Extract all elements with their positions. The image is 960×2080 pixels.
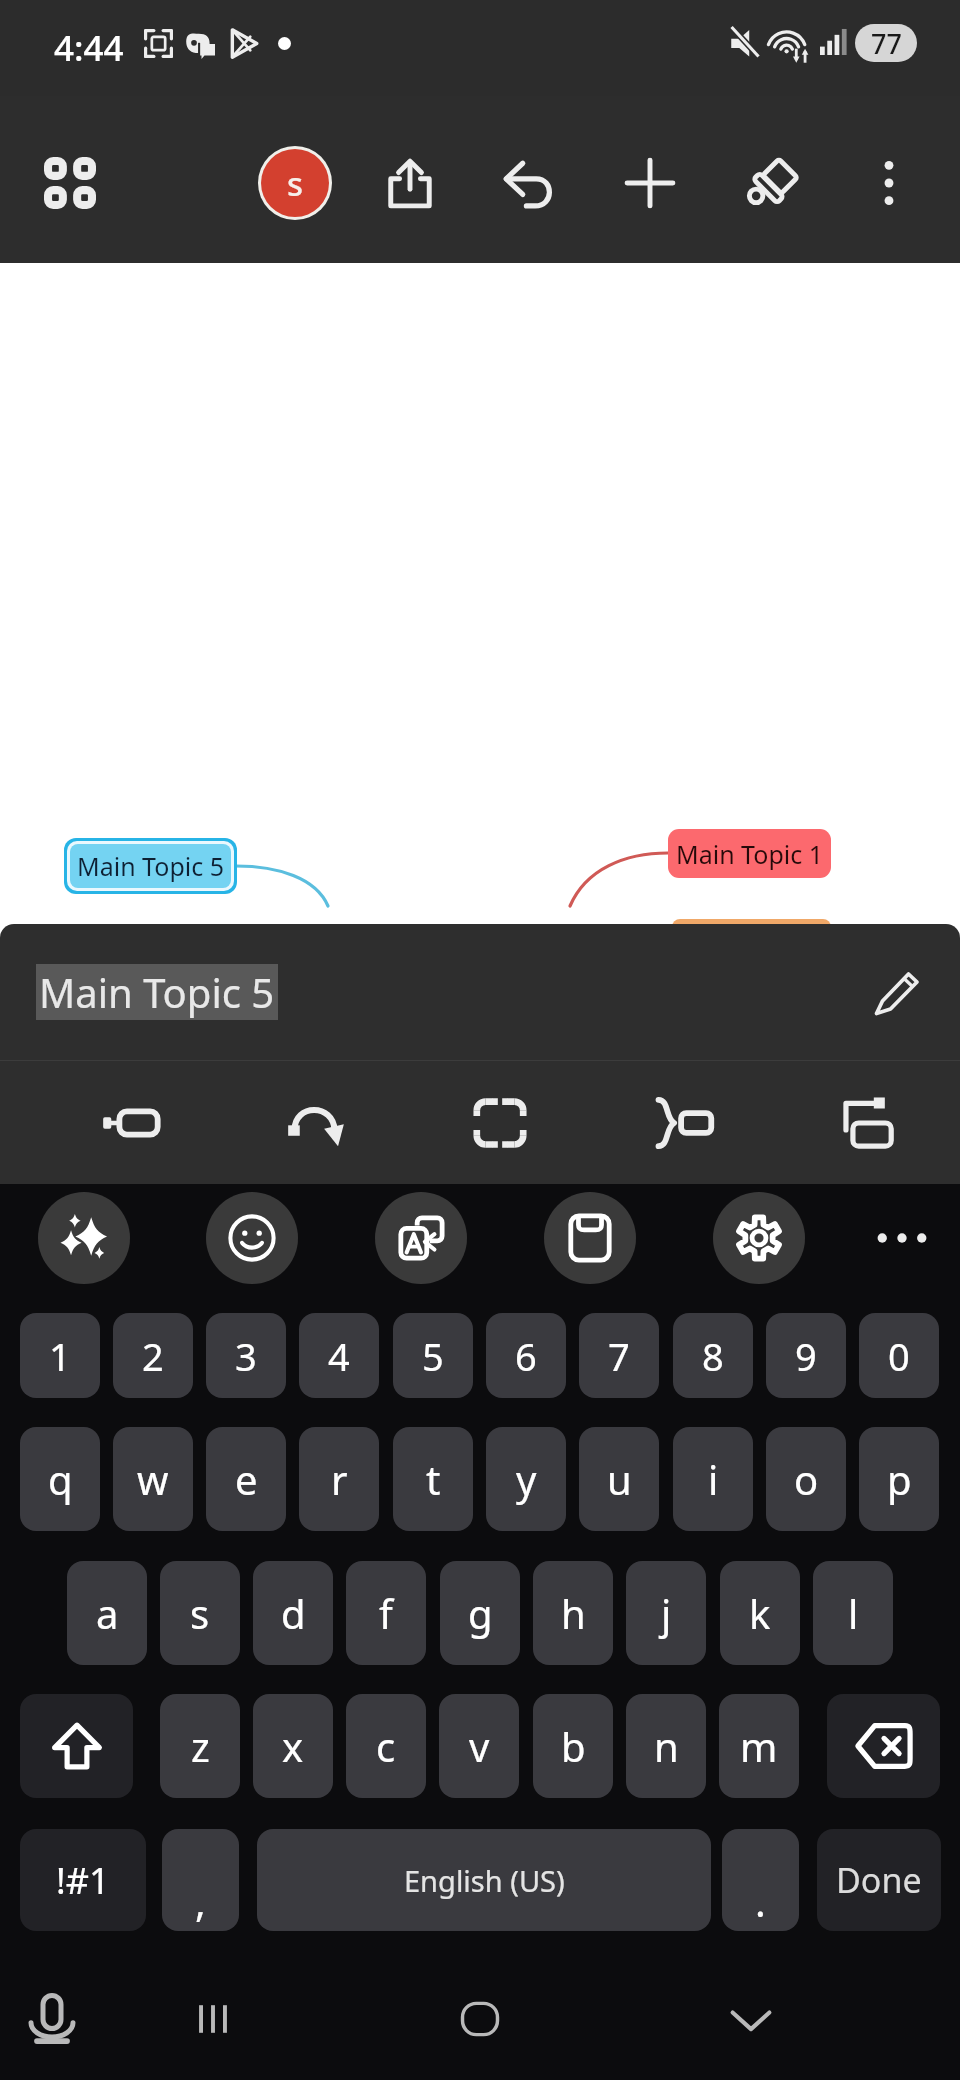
button[interactable]: Hide keyboard — [711, 1979, 791, 2059]
button[interactable]: s — [160, 1561, 240, 1665]
button[interactable]: m — [719, 1694, 799, 1798]
button[interactable]: 9 — [766, 1313, 846, 1398]
button[interactable]: Backspace — [827, 1694, 940, 1798]
button[interactable]: Share — [365, 138, 455, 228]
button[interactable]: More options — [844, 138, 934, 228]
staticText: 2 — [142, 1330, 164, 1382]
button[interactable]: i — [673, 1427, 753, 1531]
staticText: 8 — [702, 1330, 724, 1382]
staticText: English (US) — [404, 1861, 565, 1900]
button[interactable]: 2 — [113, 1313, 193, 1398]
button[interactable]: a — [67, 1561, 147, 1665]
staticText: Done — [836, 1857, 922, 1903]
button[interactable]: p — [859, 1427, 939, 1531]
staticText: z — [191, 1719, 210, 1773]
button[interactable]: e — [206, 1427, 286, 1531]
button[interactable]: Add node — [605, 138, 695, 228]
button[interactable]: Home — [440, 1979, 520, 2059]
button[interactable]: Main Topic 5 — [70, 844, 231, 888]
button[interactable]: b — [533, 1694, 613, 1798]
button[interactable]: Add child node — [822, 1061, 914, 1184]
button[interactable]: Style — [724, 138, 814, 228]
button[interactable]: Add sibling node — [85, 1061, 177, 1184]
button[interactable]: 4 — [299, 1313, 379, 1398]
button[interactable]: !#1 — [20, 1829, 146, 1931]
button[interactable]: w — [113, 1427, 193, 1531]
button[interactable]: Redo — [270, 1061, 362, 1184]
staticText: h — [561, 1586, 586, 1640]
button[interactable]: , — [162, 1829, 239, 1931]
staticText: 4:44 — [54, 24, 124, 72]
staticText: d — [281, 1586, 306, 1640]
button[interactable]: Group nodes — [638, 1061, 730, 1184]
staticText: b — [561, 1719, 586, 1773]
button[interactable]: Voice input — [12, 1979, 92, 2059]
staticText: 9 — [795, 1330, 817, 1382]
button[interactable]: Emoji — [206, 1192, 298, 1284]
button[interactable]: t — [393, 1427, 473, 1531]
button[interactable]: 8 — [673, 1313, 753, 1398]
button[interactable]: k — [720, 1561, 800, 1665]
staticText: n — [654, 1719, 679, 1773]
button[interactable]: Account — [250, 138, 340, 228]
button[interactable]: Keyboard settings — [713, 1192, 805, 1284]
button[interactable]: AI suggestions — [38, 1192, 130, 1284]
staticText: s — [190, 1586, 210, 1640]
button[interactable]: c — [346, 1694, 426, 1798]
staticText: 77 — [871, 25, 902, 62]
staticText: Main Topic 5 — [39, 965, 275, 1019]
button[interactable]: Clipboard — [544, 1192, 636, 1284]
staticText: 1 — [49, 1330, 71, 1382]
button[interactable]: 1 — [20, 1313, 100, 1398]
button[interactable]: u — [579, 1427, 659, 1531]
button[interactable]: Grid view — [25, 138, 115, 228]
staticText: 6 — [515, 1330, 537, 1382]
button[interactable]: Edit text — [862, 956, 934, 1028]
button[interactable]: q — [20, 1427, 100, 1531]
button[interactable]: Translate — [375, 1192, 467, 1284]
staticText: q — [48, 1452, 73, 1506]
button[interactable]: g — [440, 1561, 520, 1665]
button[interactable]: j — [626, 1561, 706, 1665]
staticText: u — [607, 1452, 632, 1506]
button[interactable]: y — [486, 1427, 566, 1531]
button[interactable]: 7 — [579, 1313, 659, 1398]
staticText: 4 — [328, 1330, 350, 1382]
button[interactable]: o — [766, 1427, 846, 1531]
staticText: 5 — [422, 1330, 444, 1382]
button[interactable]: More options — [856, 1192, 948, 1284]
staticText: p — [887, 1452, 912, 1506]
staticText: r — [331, 1452, 348, 1506]
button[interactable]: 3 — [206, 1313, 286, 1398]
button[interactable]: d — [253, 1561, 333, 1665]
button[interactable]: Select — [454, 1061, 546, 1184]
button[interactable]: n — [626, 1694, 706, 1798]
staticText: , — [195, 1874, 206, 1928]
button[interactable]: 6 — [486, 1313, 566, 1398]
button[interactable]: Done — [817, 1829, 941, 1931]
staticText: j — [661, 1586, 672, 1640]
button[interactable]: z — [160, 1694, 240, 1798]
button[interactable]: . — [722, 1829, 799, 1931]
staticText: x — [282, 1719, 304, 1773]
button[interactable]: l — [813, 1561, 893, 1665]
staticText: . — [755, 1874, 766, 1928]
button[interactable]: 5 — [393, 1313, 473, 1398]
button[interactable]: Undo — [484, 138, 574, 228]
button[interactable]: Recent apps — [173, 1979, 253, 2059]
button[interactable]: r — [299, 1427, 379, 1531]
button[interactable]: f — [346, 1561, 426, 1665]
button[interactable]: 0 — [859, 1313, 939, 1398]
staticText: y — [516, 1452, 537, 1506]
staticText: s — [287, 161, 304, 206]
staticText: 3 — [235, 1330, 257, 1382]
button[interactable]: x — [253, 1694, 333, 1798]
staticText: 0 — [888, 1330, 910, 1382]
staticText: g — [468, 1586, 493, 1640]
button[interactable]: English (US) — [257, 1829, 711, 1931]
button[interactable]: h — [533, 1561, 613, 1665]
button[interactable]: Shift — [20, 1694, 133, 1798]
staticText: t — [426, 1452, 441, 1506]
button[interactable]: Main Topic 1 — [668, 829, 831, 878]
button[interactable]: v — [439, 1694, 519, 1798]
